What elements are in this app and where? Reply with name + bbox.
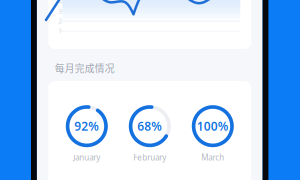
- button[interactable]: 92%: [66, 105, 108, 163]
- staticText: February: [133, 152, 166, 163]
- staticText: 3: [58, 7, 62, 16]
- staticText: 1: [58, 26, 62, 35]
- staticText: 68%: [137, 118, 162, 134]
- staticText: 100%: [197, 118, 229, 134]
- staticText: 92%: [74, 118, 99, 134]
- staticText: 2: [58, 17, 62, 25]
- staticText: 每月完成情况: [55, 61, 115, 75]
- button[interactable]: 68%: [129, 105, 171, 163]
- staticText: January: [73, 152, 100, 163]
- staticText: 4: [58, 0, 62, 6]
- button[interactable]: 100%: [192, 105, 234, 163]
- staticText: March: [201, 152, 224, 163]
